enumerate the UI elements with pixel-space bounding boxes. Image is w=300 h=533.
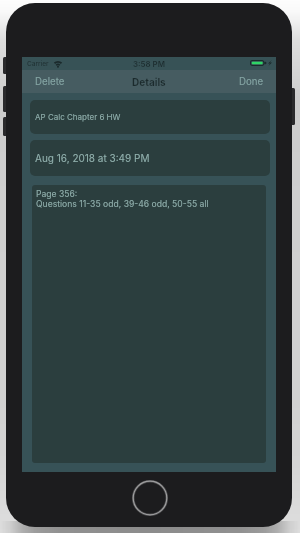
staticText: AP Calc Chapter 6 HW (35, 112, 121, 122)
staticText: Page 356: (36, 189, 78, 199)
staticText: Questions 11-35 odd, 39-46 odd, 50-55 al… (36, 199, 209, 209)
button[interactable]: Page 356: (32, 185, 266, 463)
button[interactable]: Delete (22, 72, 78, 92)
button[interactable]: Aug 16, 2018 at 3:49 PM (30, 140, 270, 176)
staticText: Delete (35, 76, 65, 88)
staticText: Done (239, 76, 264, 88)
staticText: Aug 16, 2018 at 3:49 PM (35, 152, 150, 164)
button[interactable]: Home (132, 480, 168, 516)
staticText: Carrier (27, 60, 49, 68)
button[interactable]: AP Calc Chapter 6 HW (30, 100, 270, 134)
staticText: 3:58 PM (133, 59, 165, 69)
staticText: Details (132, 76, 166, 88)
button[interactable]: Done (227, 72, 276, 92)
